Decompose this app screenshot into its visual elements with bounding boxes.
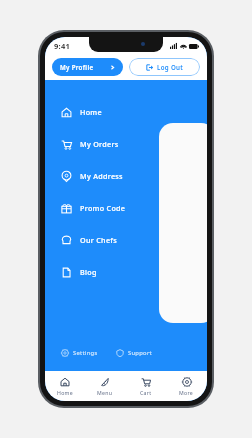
button[interactable]: Promo Code — [59, 192, 151, 224]
button[interactable]: Settings — [59, 345, 100, 361]
button[interactable]: My Profile — [52, 58, 123, 76]
staticText: Cart — [140, 389, 152, 396]
staticText: Blog — [80, 267, 97, 277]
staticText: Menu — [97, 389, 113, 396]
staticText: More — [179, 389, 194, 396]
button[interactable]: Blog — [59, 256, 151, 288]
button[interactable]: Our Chefs — [59, 224, 151, 256]
button[interactable]: Log Out — [129, 58, 200, 76]
staticText: 9:41 — [54, 41, 71, 51]
staticText: Home — [57, 389, 73, 396]
staticText: Home — [80, 107, 102, 117]
staticText: Promo Code — [80, 203, 126, 213]
staticText: Settings — [73, 349, 98, 357]
staticText: Log Out — [157, 63, 184, 71]
staticText: My Profile — [60, 63, 94, 71]
button[interactable]: Menu — [85, 374, 125, 399]
button[interactable]: Cart — [125, 374, 166, 399]
staticText: My Orders — [80, 139, 119, 149]
button[interactable]: Support — [114, 345, 154, 361]
button[interactable]: My Address — [59, 160, 151, 192]
button[interactable]: Home — [59, 96, 151, 128]
staticText: Our Chefs — [80, 235, 118, 245]
button[interactable]: My Orders — [59, 128, 151, 160]
button[interactable]: More — [166, 374, 207, 399]
button[interactable]: Home — [45, 374, 85, 399]
staticText: My Address — [80, 171, 123, 181]
staticText: Support — [128, 349, 152, 357]
